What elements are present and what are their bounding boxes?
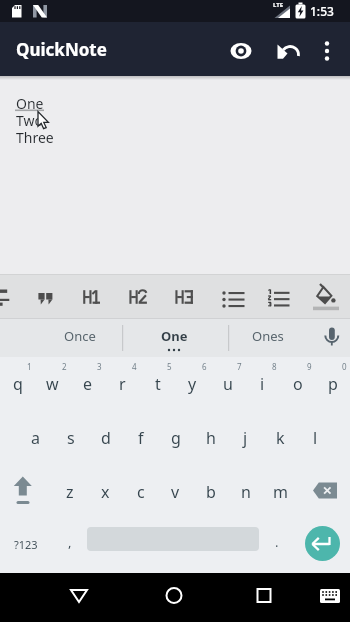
button[interactable] [158, 580, 190, 612]
button[interactable]: z [52, 465, 88, 519]
staticText: 3 [97, 361, 102, 372]
staticText: e [83, 373, 93, 395]
button[interactable]: l [298, 411, 333, 465]
staticText: 6 [202, 361, 207, 372]
staticText: 1:53 [310, 3, 334, 19]
staticText: b [206, 481, 216, 503]
staticText: LTE [273, 1, 284, 9]
staticText: . [275, 533, 279, 551]
button[interactable]: b [193, 465, 228, 519]
button[interactable]: w [35, 357, 70, 411]
button[interactable] [298, 465, 350, 519]
button[interactable]: y [175, 357, 210, 411]
button[interactable]: c [123, 465, 158, 519]
button[interactable]: . [259, 519, 294, 573]
staticText: 0 [342, 361, 347, 372]
button[interactable] [63, 580, 95, 612]
button[interactable]: g [158, 411, 193, 465]
button[interactable] [120, 282, 160, 310]
staticText: n [241, 481, 251, 503]
staticText: i [260, 373, 265, 395]
button[interactable]: Ones [233, 318, 303, 354]
button[interactable]: r [105, 357, 140, 411]
staticText: a [31, 427, 40, 449]
button[interactable]: i [245, 357, 280, 411]
staticText: 8 [272, 361, 277, 372]
button[interactable]: m [263, 465, 298, 519]
staticText: o [293, 373, 303, 395]
button[interactable] [260, 282, 300, 310]
button[interactable] [214, 282, 254, 310]
button[interactable]: ?123 [0, 519, 52, 573]
staticText: m [273, 481, 288, 503]
staticText: q [13, 373, 23, 395]
button[interactable]: One [139, 318, 209, 354]
button[interactable]: Once [45, 318, 115, 354]
button[interactable] [313, 37, 341, 65]
button[interactable]: v [158, 465, 193, 519]
staticText: ?123 [14, 537, 38, 552]
staticText: y [188, 373, 197, 395]
staticText: 9 [307, 361, 312, 372]
button[interactable]: x [88, 465, 123, 519]
staticText: One Two Three [16, 94, 54, 147]
staticText: w [46, 373, 59, 395]
button[interactable] [294, 519, 350, 573]
staticText: x [101, 481, 110, 503]
button[interactable]: n [228, 465, 263, 519]
staticText: z [66, 481, 74, 503]
staticText: h [206, 427, 216, 449]
button[interactable]: d [88, 411, 123, 465]
button[interactable] [316, 320, 348, 354]
staticText: , [68, 533, 72, 551]
button[interactable] [0, 465, 52, 519]
staticText: QuickNote [16, 38, 107, 61]
staticText: v [171, 481, 180, 503]
button[interactable] [272, 36, 300, 64]
staticText: 1 [27, 361, 32, 372]
button[interactable]: q [0, 357, 35, 411]
button[interactable] [308, 282, 344, 312]
staticText: l [313, 427, 318, 449]
staticText: 2 [62, 361, 67, 372]
staticText: Once [64, 327, 96, 345]
staticText: 4 [132, 361, 137, 372]
button[interactable]: a [17, 411, 53, 465]
staticText: Ones [252, 327, 284, 345]
button[interactable]: , [52, 519, 87, 573]
staticText: j [243, 427, 248, 449]
staticText: t [155, 373, 161, 395]
staticText: u [223, 373, 233, 395]
staticText: r [119, 373, 126, 395]
button[interactable] [227, 37, 255, 65]
staticText: g [171, 427, 181, 449]
button[interactable]: t [140, 357, 175, 411]
button[interactable]: s [53, 411, 88, 465]
button[interactable]: u [210, 357, 245, 411]
staticText: d [101, 427, 111, 449]
button[interactable]: p [315, 357, 350, 411]
button[interactable]: h [193, 411, 228, 465]
staticText: p [328, 373, 338, 395]
button[interactable] [165, 282, 206, 310]
button[interactable] [87, 519, 259, 573]
staticText: One [161, 327, 188, 345]
staticText: 7 [237, 361, 242, 372]
staticText: f [138, 427, 144, 449]
button[interactable]: k [263, 411, 298, 465]
staticText: c [137, 481, 145, 503]
button[interactable]: j [228, 411, 263, 465]
button[interactable]: f [123, 411, 158, 465]
button[interactable] [31, 282, 61, 310]
staticText: k [276, 427, 285, 449]
button[interactable] [314, 580, 346, 612]
button[interactable]: o [280, 357, 315, 411]
button[interactable] [71, 282, 111, 310]
button[interactable]: e [70, 357, 105, 411]
button[interactable] [248, 580, 280, 612]
staticText: s [67, 427, 75, 449]
staticText: 5 [167, 361, 172, 372]
button[interactable] [0, 282, 16, 310]
